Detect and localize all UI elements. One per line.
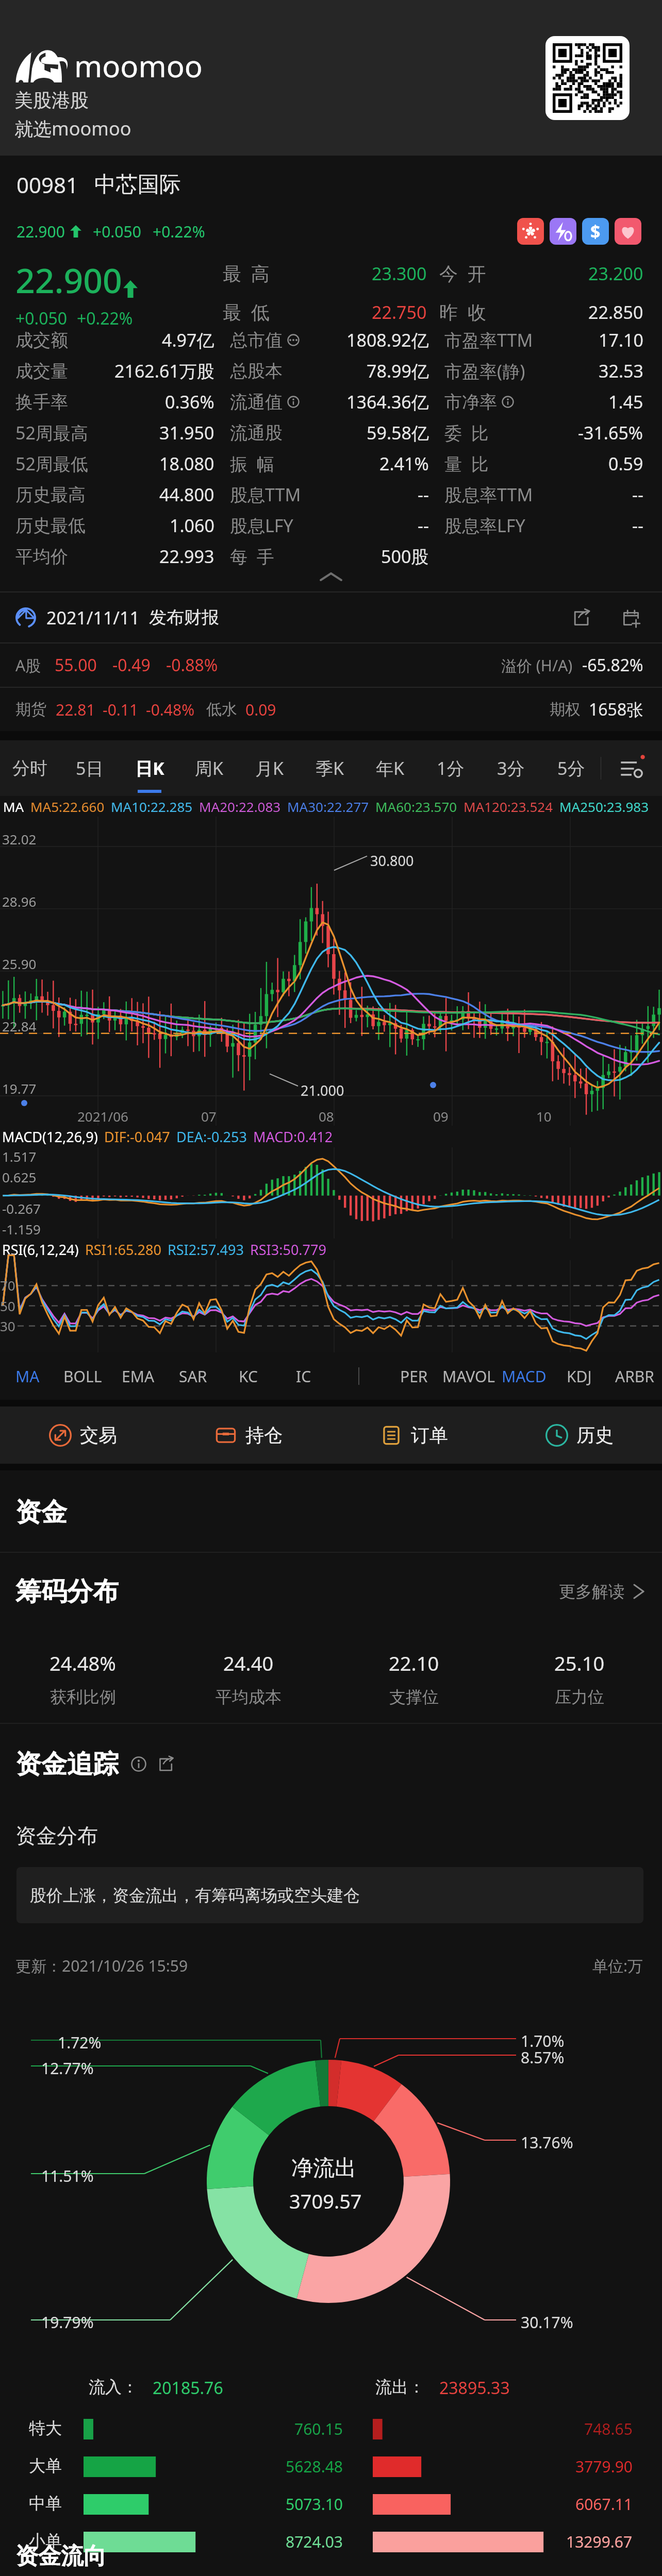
button[interactable]: 持仓 — [165, 1406, 331, 1464]
staticText: 32.53 — [599, 359, 643, 383]
staticText: MA30:22.277 — [287, 798, 369, 816]
staticText: 22.10 — [389, 1650, 439, 1676]
button[interactable]: 年K — [360, 740, 420, 796]
staticText: 历史 — [576, 1423, 614, 1447]
staticText: MACD:0.412 — [253, 1127, 333, 1146]
staticText: 成交额 — [15, 329, 68, 351]
staticText: 59.58亿 — [367, 421, 429, 445]
staticText: 资金流向 — [15, 2542, 106, 2570]
staticText: MA250:23.983 — [559, 798, 649, 816]
staticText: $ — [590, 219, 601, 243]
button[interactable]: 历史 — [496, 1406, 662, 1464]
staticText: 支撑位 — [389, 1687, 439, 1707]
staticText: MA — [3, 798, 24, 816]
staticText: 获利比例 — [50, 1687, 116, 1707]
button[interactable]: 5日 — [60, 740, 120, 796]
button[interactable]: 日K — [120, 740, 179, 796]
staticText: 5分 — [557, 756, 585, 780]
staticText: SAR — [179, 1366, 207, 1387]
button[interactable]: 3分 — [481, 740, 541, 796]
button[interactable]: Share — [570, 606, 593, 629]
staticText: MA — [15, 1366, 40, 1387]
button[interactable]: MACD — [496, 1352, 552, 1400]
button[interactable]: MA — [0, 1352, 55, 1400]
staticText: 25.10 — [554, 1650, 605, 1676]
button[interactable]: 筹码分布 — [0, 1553, 662, 1630]
staticText: 股息率LFY — [444, 514, 525, 537]
staticText: MA60:23.570 — [375, 798, 457, 816]
button[interactable]: 1分 — [420, 740, 481, 796]
staticText: 00981 — [16, 170, 79, 199]
staticText: 市盈率(静) — [444, 359, 525, 383]
staticText: +0.22% — [153, 221, 205, 242]
staticText: +0.050 — [93, 221, 141, 242]
staticText: 流通值 — [230, 391, 283, 413]
button[interactable]: 周K — [179, 740, 239, 796]
staticText: 0.09 — [245, 699, 276, 720]
button[interactable]: IC — [276, 1352, 331, 1400]
staticText: 股价上涨，资金流出，有筹码离场或空头建仓 — [30, 1885, 360, 1906]
staticText: +0.050 — [15, 307, 68, 325]
staticText: 1658张 — [589, 698, 643, 721]
staticText: 44.800 — [159, 483, 214, 506]
staticText: 年K — [376, 756, 405, 780]
staticText: 振 幅 — [230, 452, 274, 476]
staticText: 量 比 — [444, 452, 489, 476]
button[interactable]: 分时 — [0, 740, 60, 796]
staticText: 24.48% — [49, 1650, 116, 1676]
button[interactable]: KC — [221, 1352, 276, 1400]
button[interactable]: 季K — [300, 740, 360, 796]
button[interactable]: BOLL — [55, 1352, 110, 1400]
button[interactable]: 交易 — [0, 1406, 165, 1464]
staticText: 成交量 — [15, 360, 68, 382]
staticText: 2021/11/11 — [46, 606, 140, 630]
button[interactable]: KDJ — [552, 1352, 607, 1400]
staticText: 78.99亿 — [367, 359, 429, 383]
staticText: 5日 — [76, 756, 104, 780]
staticText: -0.49 — [112, 654, 151, 676]
button[interactable]: 月K — [239, 740, 300, 796]
staticText: MAVOL — [442, 1366, 495, 1387]
button[interactable]: 5分 — [541, 740, 601, 796]
button[interactable] — [331, 1352, 386, 1400]
staticText: 资金分布 — [15, 1823, 98, 1849]
staticText: 筹码分布 — [15, 1575, 119, 1608]
staticText: PER — [400, 1366, 428, 1387]
staticText: -31.65% — [578, 421, 643, 445]
staticText: 1364.36亿 — [346, 390, 429, 414]
button[interactable]: Info — [130, 1755, 147, 1773]
button[interactable]: EMA — [110, 1352, 165, 1400]
staticText: 22.750 — [372, 300, 427, 324]
staticText: IC — [296, 1366, 311, 1387]
staticText: 3分 — [497, 756, 525, 780]
button[interactable]: 2021/11/11 — [0, 592, 662, 642]
staticText: 22.900 — [15, 257, 122, 303]
staticText: 资金追踪 — [15, 1748, 119, 1781]
staticText: 最 高 — [223, 261, 270, 286]
staticText: 交易 — [80, 1423, 117, 1447]
staticText: 股息LFY — [230, 514, 293, 537]
button[interactable]: Share — [156, 1754, 176, 1774]
staticText: 今 开 — [439, 261, 486, 286]
button[interactable]: Chart settings — [601, 740, 662, 796]
staticText: -65.82% — [582, 654, 643, 676]
staticText: 23.200 — [588, 262, 643, 285]
button[interactable]: MAVOL — [441, 1352, 496, 1400]
button[interactable]: ARBR — [607, 1352, 662, 1400]
staticText: 期权 — [550, 700, 581, 719]
staticText: RSI1:65.280 — [85, 1240, 161, 1259]
button[interactable]: SAR — [165, 1352, 221, 1400]
staticText: 52周最低 — [15, 452, 88, 476]
staticText: 更多解读 — [559, 1581, 625, 1602]
staticText: 17.10 — [599, 328, 643, 352]
staticText: 1.45 — [608, 390, 643, 414]
staticText: 历史最低 — [15, 515, 86, 537]
staticText: 资金 — [15, 1496, 67, 1529]
staticText: 低水 — [206, 700, 237, 719]
staticText: A股 — [15, 655, 41, 676]
button[interactable]: 订单 — [331, 1406, 496, 1464]
button[interactable]: PER — [386, 1352, 441, 1400]
staticText: 换手率 — [15, 391, 68, 413]
staticText: MA120:23.524 — [464, 798, 553, 816]
button[interactable]: Add to calendar — [620, 606, 642, 629]
